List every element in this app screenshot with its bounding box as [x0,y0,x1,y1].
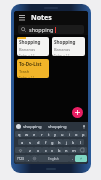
button[interactable]: v [49,147,56,153]
button[interactable]: t [45,131,52,137]
staticText: q [18,132,21,137]
staticText: Shopping weekend [19,39,47,45]
staticText: shopping [29,26,54,33]
staticText: i [69,132,71,137]
button[interactable]: z [26,147,34,153]
button[interactable]: Shopping List [52,37,85,56]
staticText: r [41,132,43,137]
button[interactable]: , [25,155,31,162]
staticText: s [29,140,31,145]
staticText: d [37,140,40,145]
button[interactable]: Create new note [72,107,83,118]
button[interactable]: l [77,139,84,145]
button[interactable]: . [69,155,75,162]
staticText: b [58,148,61,153]
button[interactable] [15,147,26,153]
staticText: Bananas [54,47,71,52]
staticText: h [58,140,61,145]
button[interactable] [31,155,38,162]
staticText: e [33,132,36,137]
staticText: k [72,140,75,145]
button[interactable]: p [80,131,87,137]
button[interactable]: m [70,147,77,153]
staticText: x [37,148,40,153]
button[interactable]: shopping [48,124,67,130]
button[interactable]: a [18,139,26,145]
button[interactable]: c [42,147,49,153]
button[interactable]: shopping [23,124,42,130]
button[interactable]: Shopping weekend [17,37,49,56]
staticText: g [51,140,54,145]
button[interactable]: Voice input [81,124,86,129]
button[interactable]: g [49,139,56,145]
staticText: y [54,132,57,137]
staticText: l [80,140,82,145]
button[interactable]: q [15,131,23,137]
button[interactable]: s [26,139,34,145]
button[interactable]: n [63,147,70,153]
button[interactable]: d [34,139,42,145]
staticText: Today • 12 November 2021 • 21:13 [19,54,47,56]
staticText: Shopping List [54,39,83,45]
button[interactable]: h [56,139,63,145]
staticText: j [66,140,68,145]
staticText: Today • 11 November 2021 • 17:41 [19,76,47,78]
button[interactable]: w [23,131,31,137]
button[interactable]: Open navigation menu [18,14,26,22]
staticText: Notes [31,13,52,23]
staticText: u [61,132,64,137]
button[interactable]: ?123 [15,155,25,162]
button[interactable]: o [73,131,80,137]
button[interactable]: Search suggestions [16,124,21,129]
button[interactable]: j [63,139,70,145]
staticText: shopping [23,124,42,130]
staticText: To-Do-List [19,61,42,67]
button[interactable]: shopping [18,25,84,34]
staticText: t [48,132,50,137]
button[interactable]: English [38,155,69,162]
staticText: w [25,132,29,137]
staticText: v [51,148,54,153]
staticText: z [29,148,31,153]
button[interactable]: u [59,131,66,137]
staticText: c [45,148,47,153]
button[interactable]: f [42,139,49,145]
button[interactable]: i [66,131,73,137]
button[interactable]: y [52,131,59,137]
staticText: o [75,132,78,137]
staticText: a [21,140,24,145]
staticText: English [48,157,59,161]
button[interactable]: To-Do-List [17,59,49,78]
staticText: Bananas [19,47,36,52]
staticText: p [82,132,85,137]
staticText: , [28,156,29,161]
button[interactable]: r [38,131,45,137]
staticText: . [72,156,73,161]
button[interactable]: e [31,131,38,137]
staticText: m [72,148,76,153]
staticText: Today • 12 November 2021 • 20:55 [54,54,83,56]
button[interactable]: b [56,147,63,153]
staticText: Trash [19,69,30,74]
staticText: shopping [48,124,67,130]
button[interactable]: x [34,147,42,153]
staticText: n [65,148,68,153]
button[interactable]: Enter [75,155,87,162]
button[interactable] [77,147,87,153]
button[interactable]: k [70,139,77,145]
staticText: ?123 [17,157,24,161]
staticText: f [45,140,47,145]
